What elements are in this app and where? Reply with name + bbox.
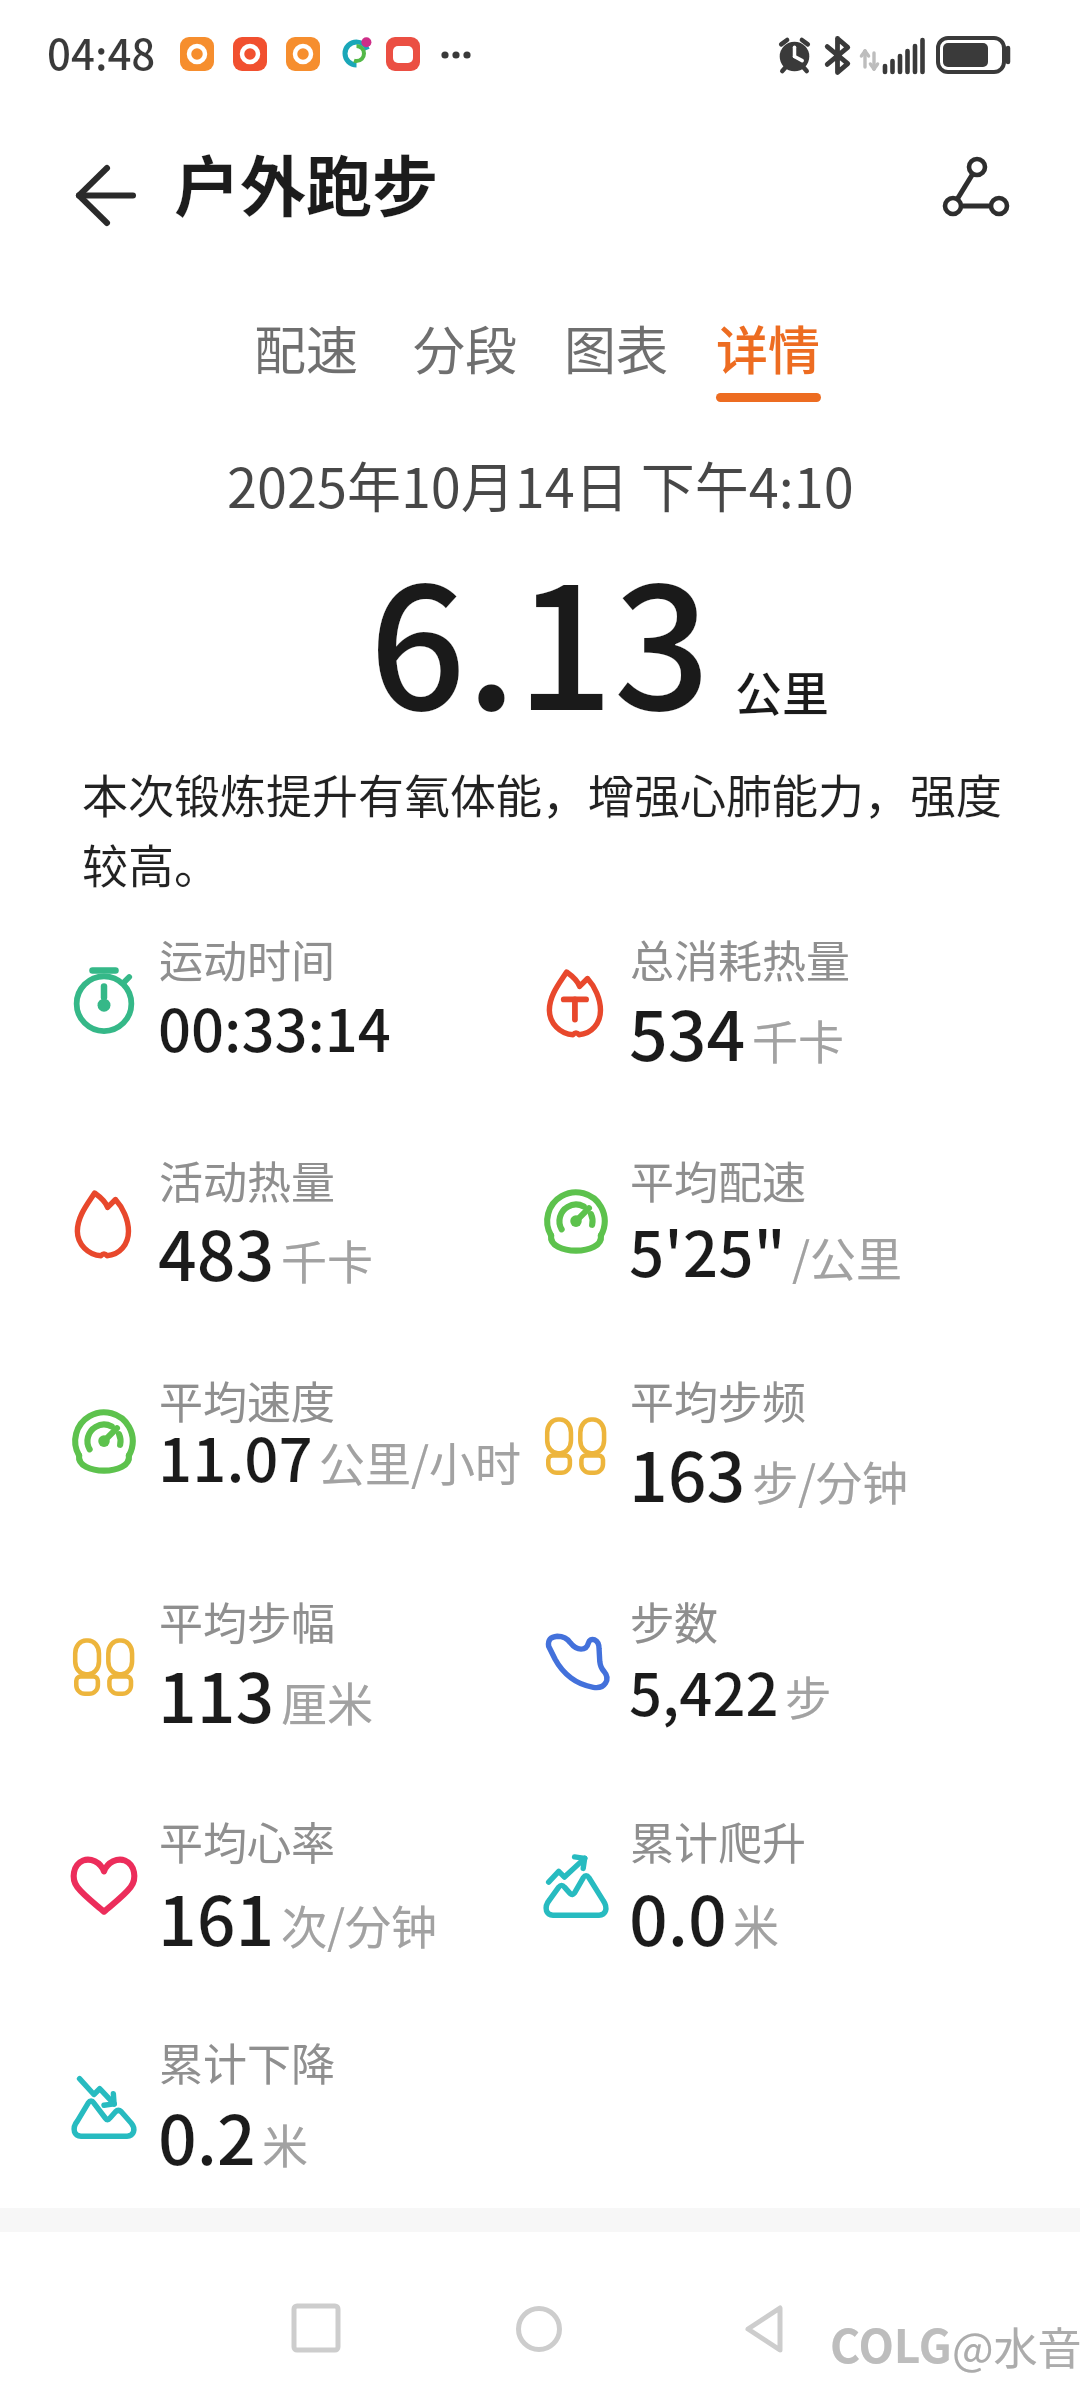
staticText: 步 [785,1662,831,1729]
staticText: 5'25" [629,1205,786,1295]
staticText: 161 [158,1867,275,1965]
button[interactable] [722,2285,812,2375]
staticText: 11.07 [158,1412,313,1499]
staticText: 163 [629,1423,746,1521]
staticText: 分段 [413,310,518,385]
button[interactable] [58,140,158,240]
staticText: 运动时间 [159,927,335,991]
staticText: 图表 [564,310,669,385]
staticText: 113 [158,1644,275,1742]
staticText: 6.13 [369,513,711,759]
staticText: 5,422 [629,1649,779,1733]
staticText: 活动热量 [159,1148,335,1212]
staticText: 本次锻炼提升有氧体能，增强心肺能力，强度较高。 [82,760,1017,896]
staticText: 0.2 [158,2086,256,2184]
staticText: /公里 [792,1223,903,1290]
staticText: 千卡 [752,1006,844,1073]
staticText: 483 [158,1202,275,1300]
staticText: 次/分钟 [281,1891,438,1958]
staticText: 公里/小时 [319,1428,522,1495]
staticText: 534 [629,982,746,1080]
staticText: 累计爬升 [630,1809,806,1873]
staticText: 米 [262,2110,308,2177]
staticText: 步数 [630,1589,718,1653]
staticText: 平均步频 [630,1368,806,1432]
staticText: 2025年10月14日 下午4:10 [227,445,854,523]
staticText: 配速 [254,310,359,385]
staticText: 户外跑步 [174,134,438,230]
staticText: 0.0 [629,1867,727,1965]
button[interactable] [920,135,1020,235]
staticText: 公里 [735,656,829,724]
staticText: @水音 [952,2314,1080,2378]
staticText: 平均配速 [630,1148,806,1212]
button[interactable]: 配速 [230,296,383,399]
staticText: 04:48 [47,21,156,82]
button[interactable]: 图表 [540,296,693,399]
staticText: 平均速度 [159,1368,335,1432]
button[interactable]: 详情 [692,296,845,399]
staticText: 千卡 [281,1226,373,1293]
button[interactable] [272,2285,362,2375]
staticText: 详情 [716,310,821,385]
staticText: 米 [733,1891,779,1958]
staticText: 平均心率 [159,1809,335,1873]
button[interactable]: 分段 [389,296,542,399]
staticText: 总消耗热量 [630,927,850,991]
staticText: 累计下降 [159,2030,335,2094]
staticText: 厘米 [281,1668,373,1735]
staticText: 平均步幅 [159,1589,335,1653]
staticText: 步/分钟 [752,1447,909,1514]
staticText: COLG [830,2310,952,2377]
button[interactable] [494,2285,584,2375]
staticText: 00:33:14 [158,985,391,1069]
